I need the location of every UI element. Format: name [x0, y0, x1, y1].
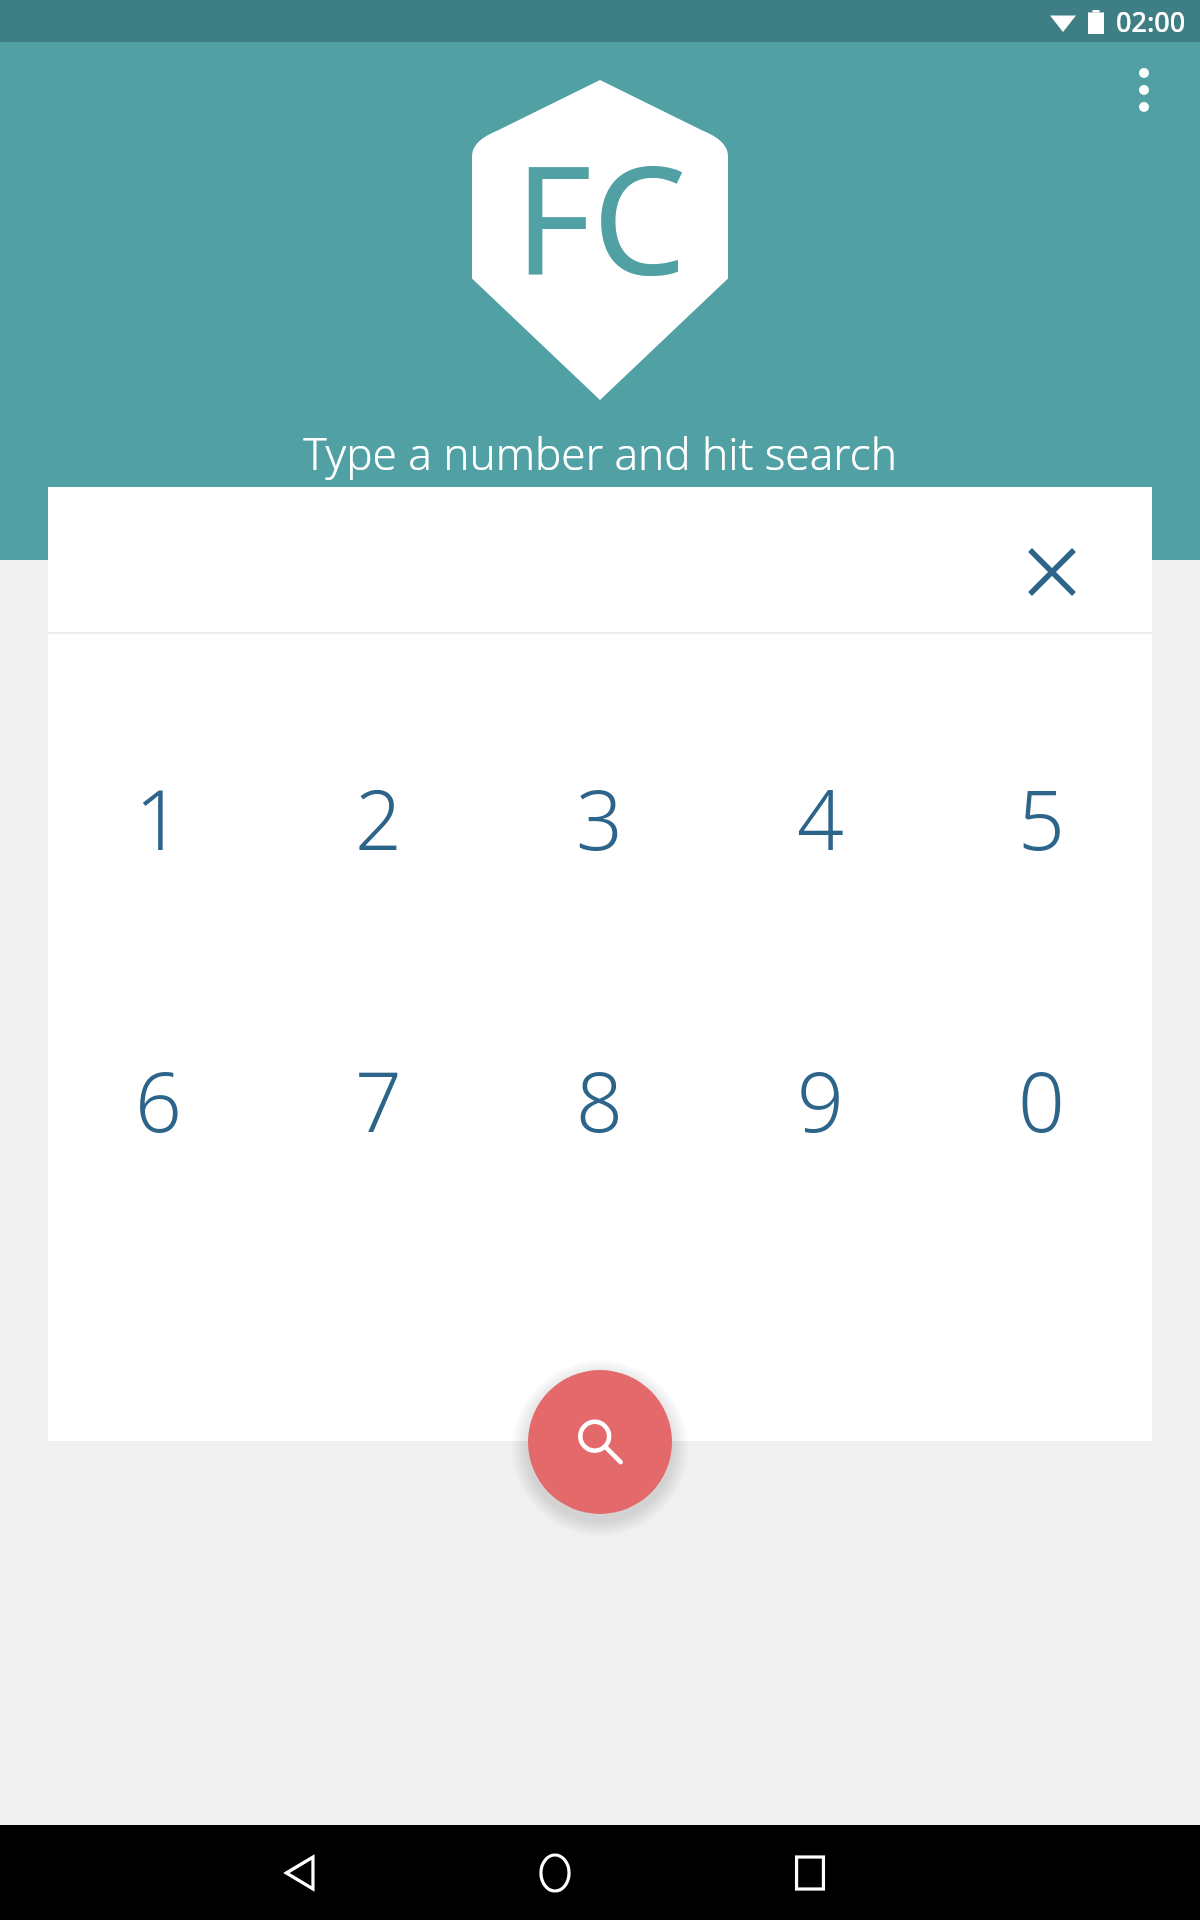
staticText: 7	[355, 1044, 402, 1156]
button[interactable]: 2	[268, 748, 489, 888]
button[interactable]: 8	[489, 1030, 710, 1170]
staticText: 0	[1018, 1044, 1065, 1156]
button[interactable]: Clear	[1008, 528, 1096, 616]
staticText: 4	[797, 762, 844, 874]
button[interactable]: More options	[1106, 52, 1182, 128]
button[interactable]: 5	[931, 748, 1152, 888]
button[interactable]: 0	[931, 1030, 1152, 1170]
staticText: 02:00	[1116, 3, 1186, 40]
staticText: FC	[514, 115, 687, 319]
button[interactable]: Recents	[765, 1828, 855, 1918]
staticText: 6	[135, 1044, 182, 1156]
staticText: 2	[355, 762, 402, 874]
staticText: 9	[797, 1044, 844, 1156]
button[interactable]: 7	[268, 1030, 489, 1170]
button[interactable]: 6	[48, 1030, 268, 1170]
button[interactable]: Back	[255, 1828, 345, 1918]
button[interactable]: Home	[510, 1828, 600, 1918]
staticText: 8	[576, 1044, 623, 1156]
button[interactable]: Search	[528, 1370, 672, 1514]
button[interactable]: 1	[48, 748, 268, 888]
staticText: 3	[576, 762, 623, 874]
staticText: 1	[135, 762, 182, 874]
button[interactable]: 3	[489, 748, 710, 888]
button[interactable]: 4	[710, 748, 931, 888]
staticText: 5	[1018, 762, 1065, 874]
staticText: Type a number and hit search	[303, 423, 897, 483]
button[interactable]: 9	[710, 1030, 931, 1170]
